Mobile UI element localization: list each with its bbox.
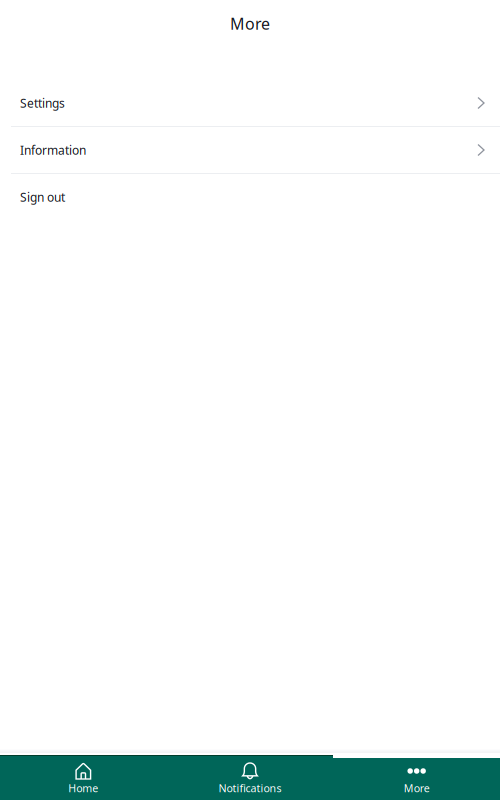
staticText: More [230, 13, 270, 34]
button[interactable]: Information [0, 127, 500, 173]
staticText: Sign out [20, 189, 65, 205]
staticText: More [404, 781, 430, 795]
button[interactable]: Home [0, 756, 167, 800]
button[interactable]: Notifications [167, 756, 333, 800]
staticText: Home [68, 781, 98, 795]
button[interactable]: Settings [0, 80, 500, 126]
button[interactable]: More [333, 756, 500, 800]
staticText: Settings [20, 95, 65, 111]
staticText: Information [20, 142, 86, 158]
staticText: Notifications [218, 781, 281, 795]
button[interactable]: Sign out [0, 174, 500, 220]
